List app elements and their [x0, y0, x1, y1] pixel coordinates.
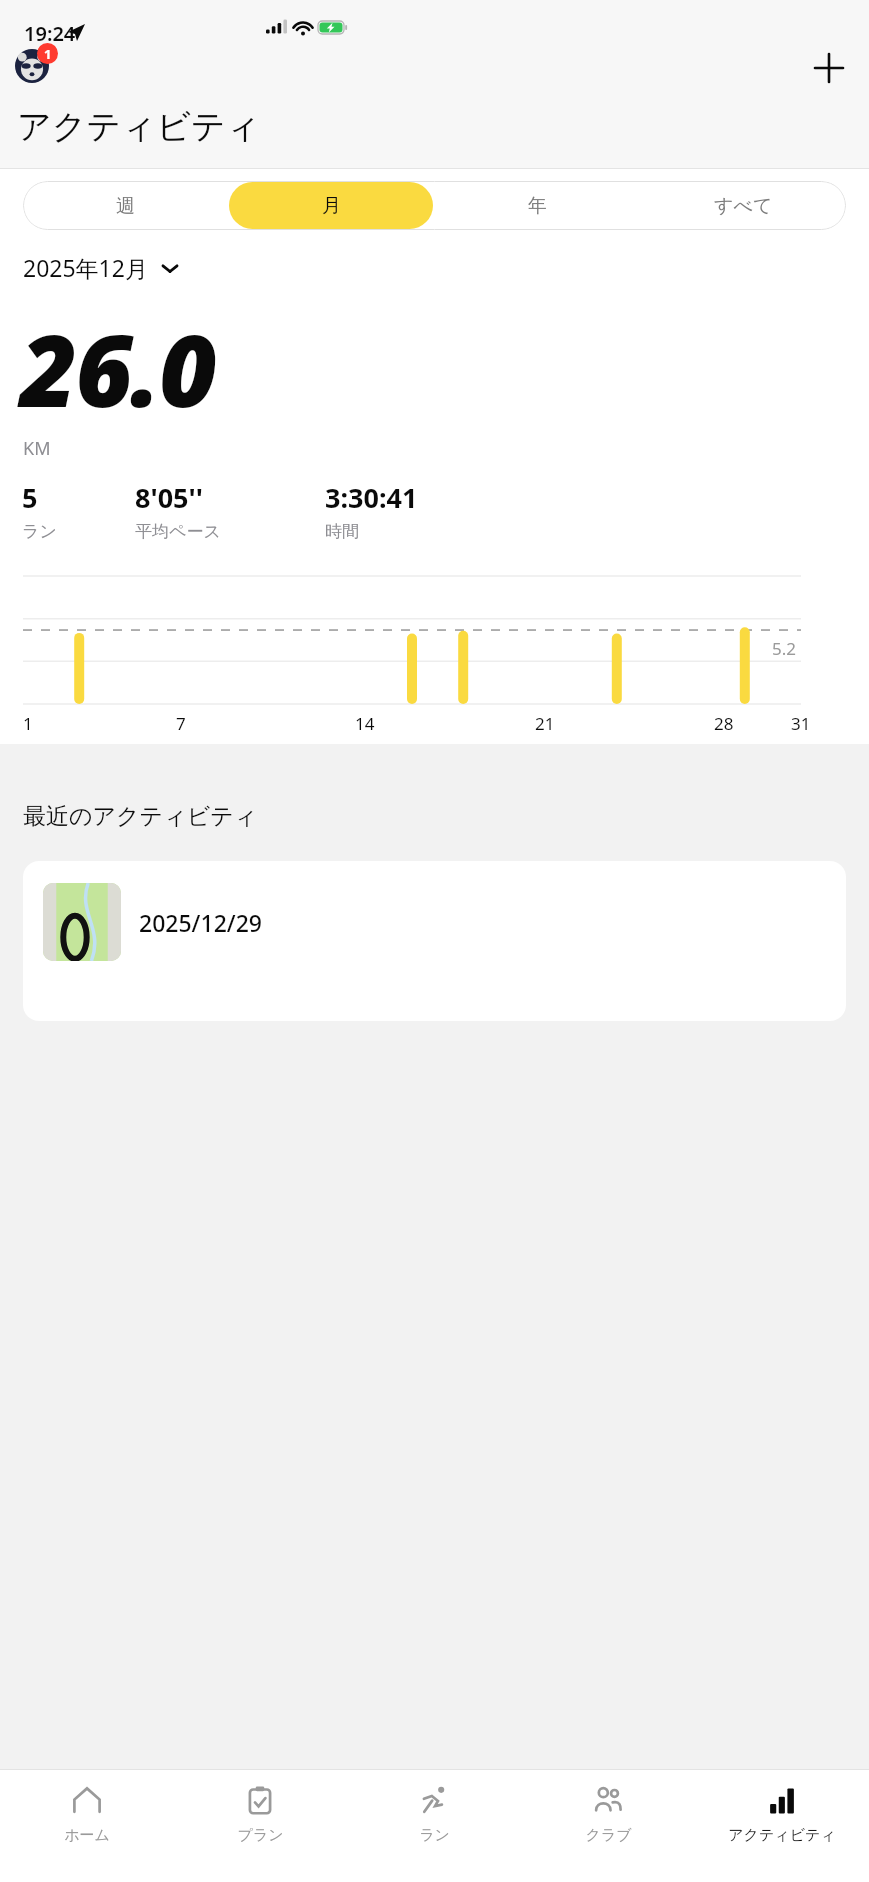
staticText: 8'05'' — [135, 479, 203, 516]
staticText: ホーム — [64, 1826, 110, 1845]
staticText: 3:30:41 — [325, 479, 418, 516]
button[interactable]: 2025/12/29 — [23, 861, 846, 1021]
staticText: アクティビティ — [17, 105, 261, 148]
staticText: プラン — [237, 1826, 284, 1845]
staticText: 1 — [23, 712, 33, 735]
staticText: 平均ペース — [135, 521, 221, 542]
button[interactable]: クラブ — [521, 1770, 695, 1882]
staticText: 2025年12月 — [23, 252, 148, 283]
staticText: ラン — [419, 1826, 450, 1845]
staticText: 月 — [322, 194, 341, 218]
button[interactable]: プラン — [173, 1770, 347, 1882]
staticText: 5 — [22, 479, 38, 516]
button[interactable]: 週 — [24, 182, 227, 229]
staticText: KM — [23, 436, 51, 461]
button[interactable]: 月 — [229, 182, 433, 229]
button[interactable]: ラン — [347, 1770, 521, 1882]
staticText: ラン — [22, 521, 57, 542]
button[interactable]: 年 — [435, 182, 639, 229]
staticText: 週 — [116, 194, 135, 218]
staticText: 31 — [791, 712, 811, 735]
staticText: 21 — [535, 712, 555, 735]
staticText: 5.2 — [772, 637, 797, 660]
staticText: 2025/12/29 — [139, 907, 262, 938]
staticText: 7 — [176, 712, 186, 735]
button[interactable]: アクティビティ — [695, 1770, 869, 1882]
staticText: 28 — [714, 712, 734, 735]
button[interactable]: ホーム — [0, 1770, 173, 1882]
staticText: クラブ — [585, 1826, 632, 1845]
staticText: アクティビティ — [728, 1826, 836, 1845]
staticText: 1 — [44, 45, 52, 63]
staticText: 時間 — [325, 521, 359, 542]
staticText: 最近のアクティビティ — [23, 802, 258, 831]
button[interactable]: Profile — [15, 49, 49, 83]
button[interactable]: Add — [808, 47, 850, 89]
staticText: 14 — [355, 712, 375, 735]
button[interactable]: すべて — [641, 182, 845, 229]
staticText: 19:24 — [24, 20, 76, 47]
staticText: 年 — [528, 194, 547, 218]
button[interactable]: 2025年12月 — [23, 252, 181, 283]
staticText: 26.0 — [20, 301, 215, 436]
staticText: すべて — [714, 194, 773, 218]
